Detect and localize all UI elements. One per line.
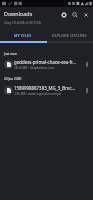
button[interactable]: More options (83, 84, 90, 97)
button[interactable]: EXPLORE OFFLINE (46, 30, 93, 41)
staticText: goddess-primal-chaos-sea-fr… (14, 59, 76, 65)
button[interactable]: MY FILES (0, 30, 46, 41)
staticText: 1589998887383_MG_5_Broc… (14, 85, 76, 91)
staticText: Using 127.40 MB of 108.73 GB (4, 21, 41, 25)
button[interactable]: Settings (58, 9, 69, 20)
staticText: Just now (4, 52, 17, 56)
staticText: MY FILES (14, 33, 32, 38)
staticText: Downloads (4, 10, 33, 17)
staticText: EXPLORE OFFLINE (52, 33, 87, 38)
button[interactable]: Search (69, 9, 80, 20)
staticText: 2.56 MB • www.mgnicolor.com.ph (14, 92, 62, 96)
button[interactable]: More options (83, 58, 90, 71)
staticText: 28.34 MB • dl.apkadmin.com (14, 66, 55, 70)
button[interactable]: goddess-primal-chaos-sea-fr… (0, 57, 93, 72)
button[interactable]: Close (80, 9, 91, 20)
button[interactable]: 1589998887383_MG_5_Broc… (0, 83, 93, 98)
staticText: 23 Jun 2020 (4, 77, 22, 81)
